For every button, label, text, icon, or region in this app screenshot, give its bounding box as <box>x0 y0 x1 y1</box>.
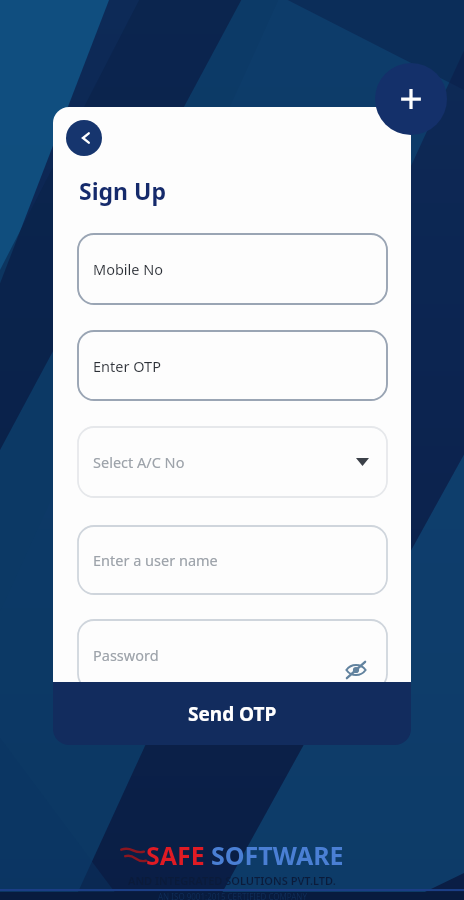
staticText: Password <box>93 645 159 665</box>
button[interactable]: Open dropdown <box>351 451 373 473</box>
staticText: Sign Up <box>79 175 166 206</box>
button[interactable]: Send OTP <box>53 682 411 745</box>
button[interactable]: Enter a user name <box>78 526 387 594</box>
button[interactable]: Show password <box>343 657 369 682</box>
staticText: Mobile No <box>93 259 164 279</box>
button[interactable]: Enter OTP <box>78 331 387 400</box>
button[interactable]: Select A/C No <box>78 427 387 497</box>
button[interactable]: Add <box>375 63 447 135</box>
staticText: SOFTWARE <box>211 838 344 872</box>
staticText: Select A/C No <box>93 452 185 472</box>
staticText: AN ISO 9001:2015 CERTIFIED COMPANY <box>158 891 307 900</box>
staticText: AND INTEGRATED SOLUTIONS PVT.LTD. <box>128 873 336 888</box>
staticText: Enter OTP <box>93 356 161 376</box>
button[interactable]: Password <box>78 620 387 682</box>
staticText: Enter a user name <box>93 550 218 570</box>
button[interactable]: Back <box>66 120 102 156</box>
button[interactable]: Mobile No <box>78 234 387 304</box>
staticText: Send OTP <box>188 701 277 727</box>
staticText: SAFE <box>146 838 205 872</box>
